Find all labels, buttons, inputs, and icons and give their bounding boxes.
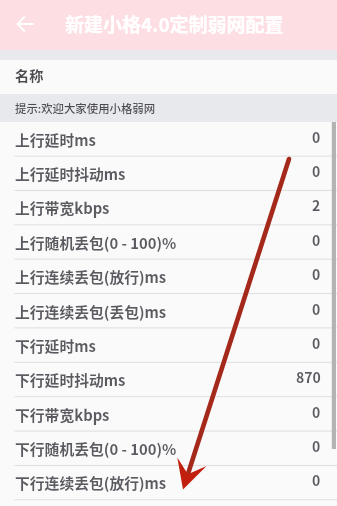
staticText: 0 <box>312 230 321 250</box>
button[interactable]: 下行随机丢包(0 - 100)% <box>0 431 337 465</box>
staticText: 2 <box>312 195 321 215</box>
staticText: 0 <box>312 470 321 490</box>
staticText: 上行延时ms <box>15 129 96 150</box>
button[interactable]: 上行延时ms <box>0 122 337 156</box>
staticText: 新建小格4.0定制弱网配置 <box>65 10 284 38</box>
staticText: 0 <box>312 436 321 456</box>
staticText: 0 <box>312 299 321 319</box>
button[interactable]: 下行连续丢包(放行)ms <box>0 465 337 499</box>
button[interactable]: Back <box>3 2 47 46</box>
staticText: 下行延时ms <box>15 335 96 356</box>
staticText: 上行连续丢包(放行)ms <box>15 266 167 287</box>
button[interactable]: 上行连续丢包(放行)ms <box>0 259 337 293</box>
staticText: 0 <box>312 264 321 284</box>
button[interactable]: 上行连续丢包(丢包)ms <box>0 294 337 328</box>
staticText: 0 <box>312 402 321 422</box>
staticText: 0 <box>312 333 321 353</box>
staticText: 上行随机丢包(0 - 100)% <box>15 232 177 253</box>
staticText: 上行连续丢包(丢包)ms <box>15 301 167 322</box>
staticText: 下行随机丢包(0 - 100)% <box>15 438 177 459</box>
button[interactable]: 下行延时抖动ms <box>0 362 337 396</box>
button[interactable]: 下行带宽kbps <box>0 397 337 431</box>
button[interactable]: 下行延时ms <box>0 328 337 362</box>
button[interactable]: 上行带宽kbps <box>0 190 337 224</box>
button[interactable]: 上行随机丢包(0 - 100)% <box>0 225 337 259</box>
staticText: 870 <box>296 367 321 387</box>
button[interactable]: 上行延时抖动ms <box>0 156 337 190</box>
staticText: 上行带宽kbps <box>15 197 110 218</box>
staticText: 下行连续丢包(放行)ms <box>15 472 167 493</box>
staticText: 名称 <box>15 65 44 86</box>
staticText: 上行延时抖动ms <box>15 163 126 184</box>
staticText: 提示:欢迎大家使用小格弱网 <box>15 100 156 117</box>
staticText: 下行带宽kbps <box>15 404 110 425</box>
staticText: 0 <box>312 127 321 147</box>
staticText: 下行延时抖动ms <box>15 369 126 390</box>
staticText: 0 <box>312 161 321 181</box>
